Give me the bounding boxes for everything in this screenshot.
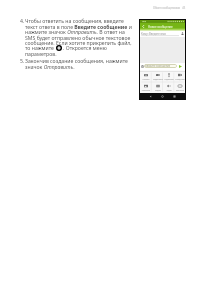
staticText: Закончив создание сообщения, нажмите [25, 57, 128, 64]
staticText: Видео [153, 89, 163, 91]
button[interactable]: Картинки [140, 82, 152, 93]
button[interactable]: Аудиозапись [163, 71, 174, 82]
staticText: значок Отправить. [25, 63, 75, 70]
staticText: то нажмите [25, 44, 54, 51]
button[interactable]: Снимок [140, 71, 152, 82]
staticText: Картинки [141, 89, 151, 91]
staticText: параметров. [25, 50, 57, 57]
staticText: 4. [20, 17, 25, 24]
staticText: SMS будет отправлено обычное текстовое [25, 34, 131, 41]
staticText: Новое сообщение [148, 25, 173, 29]
staticText: Контакты [175, 89, 185, 91]
staticText: Чтобы ответить на сообщения, введите [25, 17, 124, 24]
staticText: Введите сообщение [145, 64, 171, 68]
staticText: . Откроется меню [63, 44, 107, 51]
other: Back [149, 95, 152, 98]
button[interactable]: Видео [152, 82, 163, 93]
staticText: 5. [20, 57, 25, 64]
staticText: Обмен сообщениями 45 [153, 6, 186, 10]
staticText: текст ответа в поле Введите сообщение и [25, 23, 132, 30]
staticText: Аудиозапись [164, 78, 174, 80]
staticText: Снимок [141, 78, 151, 80]
staticText: Аудио [164, 89, 174, 91]
other: Home [161, 95, 164, 98]
button[interactable]: Аудио [163, 82, 174, 93]
staticText: Слайд-шоу [175, 78, 185, 80]
other: Recents [173, 95, 176, 98]
button[interactable]: Видеозапись [152, 71, 163, 82]
button[interactable]: Слайд-шоу [174, 71, 185, 82]
staticText: нажмите значок Отправить. В ответ на [25, 28, 125, 35]
button[interactable]: Контакты [174, 82, 185, 93]
staticText: Кому: Введите имя [141, 32, 166, 36]
staticText: Видеозапись [153, 78, 163, 80]
staticText: сообщение. Если хотите прикрепить файл, [25, 39, 132, 46]
